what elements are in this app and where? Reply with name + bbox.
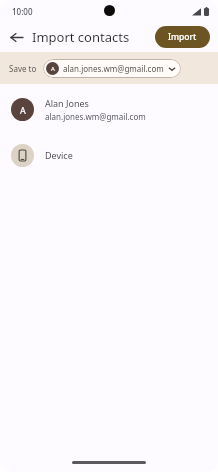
button[interactable]: A [0,90,218,128]
staticText: Import [168,31,197,43]
staticText: alan.jones.wm@gmail.com [45,111,146,122]
button[interactable]: Device [0,138,218,172]
staticText: A [20,104,26,116]
staticText: Alan Jones [45,97,89,109]
staticText: A [51,65,55,73]
button[interactable]: Back [4,25,28,49]
staticText: Device [45,149,73,161]
staticText: alan.jones.wm@gmail.com [63,63,164,74]
staticText: Import contacts [32,28,130,46]
button[interactable]: A [43,59,181,78]
staticText: 10:00 [12,6,33,17]
button[interactable]: Import [155,26,210,48]
staticText: Save to [9,63,37,74]
